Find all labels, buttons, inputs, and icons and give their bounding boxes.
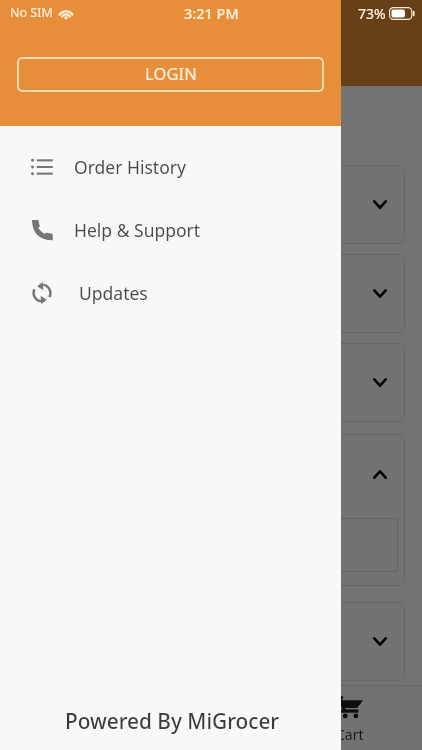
button[interactable]: Cart <box>300 685 400 750</box>
button[interactable]: Offers <box>100 685 200 750</box>
staticText: Cart <box>336 725 364 744</box>
staticText: No SIM <box>10 4 53 21</box>
staticText: Orders <box>227 725 273 744</box>
button[interactable]: Updates <box>0 261 341 324</box>
button[interactable]: Expand <box>366 279 394 307</box>
button[interactable]: Collapse <box>12 434 405 586</box>
staticText: 73% <box>358 4 386 23</box>
button[interactable]: Expand <box>366 368 394 396</box>
staticText: 3:21 PM <box>184 3 239 23</box>
button[interactable]: Home <box>0 685 100 750</box>
staticText: Updates <box>79 281 148 305</box>
staticText: Help & Support <box>74 218 201 242</box>
button[interactable]: Expand <box>12 602 405 681</box>
staticText: Offers <box>130 725 171 744</box>
button[interactable]: LOGIN <box>17 57 324 92</box>
button[interactable]: Collapse <box>366 460 394 488</box>
staticText: Home <box>30 725 70 744</box>
button[interactable]: Expand <box>366 190 394 218</box>
button[interactable]: Orders <box>200 685 300 750</box>
button[interactable]: Expand <box>12 254 405 333</box>
staticText: Powered By MiGrocer <box>65 707 280 735</box>
button[interactable]: Expand <box>366 627 394 655</box>
button[interactable]: Order History <box>0 135 341 198</box>
button[interactable]: Help & Support <box>0 198 341 261</box>
button[interactable]: Expand <box>12 165 405 244</box>
staticText: LOGIN <box>145 62 197 84</box>
button[interactable]: Expand <box>12 343 405 422</box>
staticText: Order History <box>74 155 186 179</box>
